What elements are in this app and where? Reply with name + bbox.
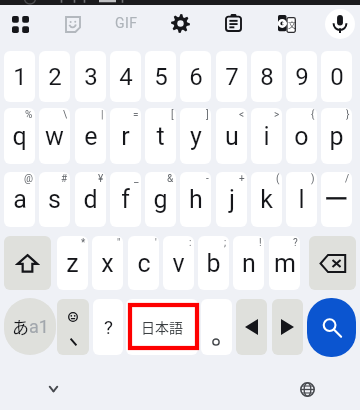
button[interactable]: Clipboard [217,7,249,39]
button[interactable]: Backspace [309,236,356,290]
button[interactable]: i [251,108,282,164]
staticText: r [121,122,130,151]
button[interactable]: g [145,172,176,227]
staticText: [ [171,109,174,121]
button[interactable]: Shift [4,236,51,290]
staticText: e [84,122,98,151]
button[interactable]: Stickers [57,8,89,40]
button[interactable]: ー [321,172,352,227]
staticText: : [189,237,192,249]
staticText: 8 [260,63,274,91]
button[interactable]: 7 [216,51,247,102]
staticText: k [260,185,273,214]
button[interactable]: e [75,108,106,164]
button[interactable]: Search [307,298,356,357]
button[interactable]: o [286,108,317,164]
staticText: { [311,109,315,121]
button[interactable]: y [180,108,211,164]
staticText: * [81,237,86,249]
staticText: j [229,185,235,214]
button[interactable]: t [145,108,176,164]
staticText: 9 [295,63,309,91]
staticText: s [48,185,61,214]
staticText: f [121,185,130,214]
button[interactable]: Hide keyboard [37,376,69,402]
staticText: x [101,249,114,278]
staticText: p [329,122,344,151]
button[interactable]: Move cursor left [236,299,267,355]
staticText: @ [24,173,33,185]
button[interactable]: ? [93,299,123,355]
button[interactable]: v [163,236,194,290]
staticText: ' [155,237,157,249]
button[interactable]: Voice input [325,9,355,39]
staticText: h [189,185,203,214]
staticText: ¥ [98,173,104,185]
button[interactable]: w [39,108,70,164]
button[interactable]: d [75,172,106,227]
staticText: < [239,109,245,121]
staticText: v [172,249,185,278]
button[interactable]: 0 [321,51,352,102]
staticText: _ [134,173,139,185]
button[interactable]: Settings [164,7,196,39]
staticText: ? [104,316,113,338]
button[interactable]: 9 [286,51,317,102]
button[interactable]: r [110,108,141,164]
staticText: > [274,109,280,121]
staticText: - [206,173,209,185]
staticText: z [66,249,79,278]
button[interactable]: Move cursor right [272,299,303,355]
button[interactable]: 1 [4,51,35,102]
staticText: \ [63,109,68,121]
button[interactable]: s [39,172,70,227]
button[interactable]: Change language [293,375,321,403]
button[interactable]: n [233,236,264,290]
staticText: / [345,173,350,185]
staticText: a1 [29,316,49,337]
staticText: 7 [225,63,239,91]
button[interactable]: 4 [110,51,141,102]
staticText: o [294,122,309,151]
button[interactable]: p [321,108,352,164]
button[interactable]: GIF [110,7,142,39]
button[interactable]: u [216,108,247,164]
button[interactable]: l [286,172,317,227]
button[interactable]: m [269,236,300,290]
button[interactable]: j [216,172,247,227]
staticText: } [346,109,350,121]
button[interactable]: a [4,172,35,227]
staticText: a [13,185,27,214]
staticText: i [263,122,270,151]
staticText: # [61,173,68,185]
button[interactable]: 2 [39,51,70,102]
button[interactable]: Emoji [57,299,89,355]
button[interactable]: Translate [278,15,296,33]
staticText: 3 [84,63,98,91]
staticText: | [101,109,104,121]
button[interactable]: Period [201,299,232,355]
button[interactable]: k [251,172,282,227]
button[interactable]: 5 [145,51,176,102]
button[interactable]: Apps [4,8,36,40]
button[interactable]: 3 [75,51,106,102]
staticText: ] [206,109,209,121]
button[interactable]: 6 [180,51,211,102]
staticText: ! [259,237,262,249]
button[interactable]: f [110,172,141,227]
button[interactable]: 8 [251,51,282,102]
button[interactable]: c [128,236,159,290]
button[interactable]: 日本語 [126,299,198,355]
button[interactable]: b [198,236,229,290]
button[interactable]: x [92,236,123,290]
staticText: あ [12,314,29,339]
staticText: ; [224,237,227,249]
button[interactable]: z [57,236,88,290]
staticText: 1 [13,63,27,91]
button[interactable]: q [4,108,35,164]
button[interactable]: あ [4,298,56,355]
staticText: l [298,185,305,214]
button[interactable]: h [180,172,211,227]
staticText: 文 [288,19,296,31]
staticText: w [45,122,64,151]
